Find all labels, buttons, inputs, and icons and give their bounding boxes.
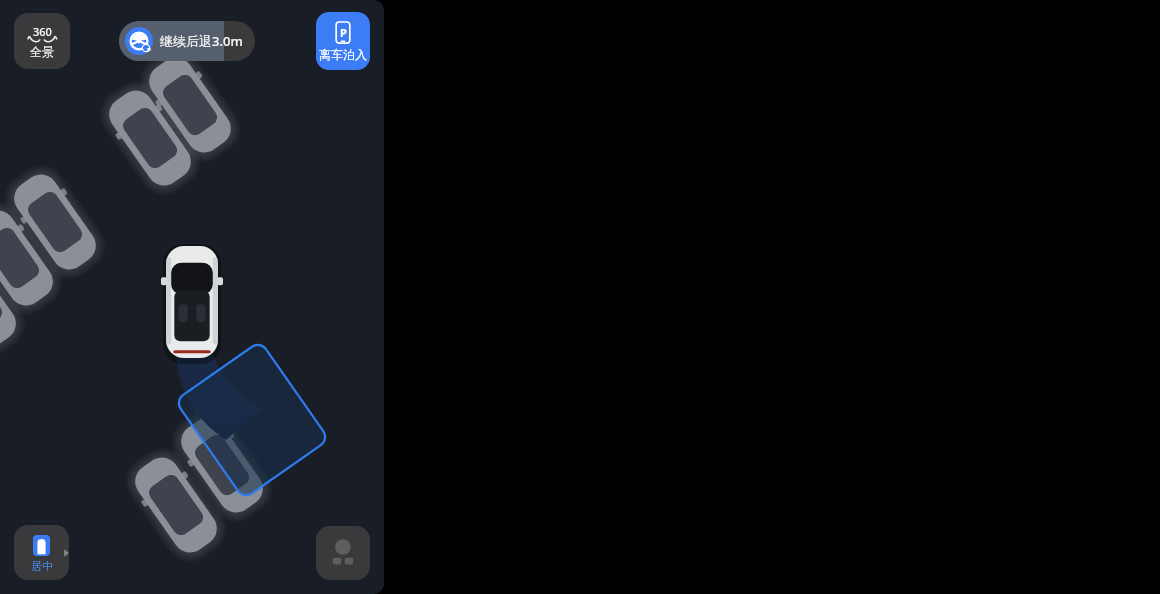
staticText: P <box>340 25 347 40</box>
button[interactable]: P <box>316 12 370 70</box>
staticText: 继续后退3.0m <box>160 32 243 50</box>
staticText: 离车泊入 <box>319 47 367 62</box>
staticText: 全景 <box>30 44 54 59</box>
staticText: P <box>147 46 151 54</box>
button[interactable]: View layout <box>316 526 370 580</box>
button[interactable]: P <box>119 21 255 61</box>
button[interactable]: 居中 <box>14 525 69 580</box>
staticText: 居中 <box>31 559 53 573</box>
button[interactable]: 360 <box>14 13 70 69</box>
staticText: 360 <box>33 24 52 39</box>
